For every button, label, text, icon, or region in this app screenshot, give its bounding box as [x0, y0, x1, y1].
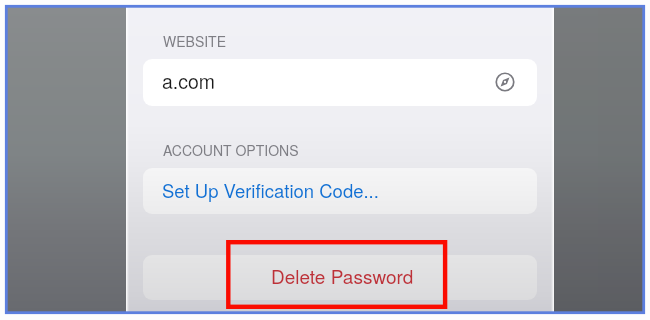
staticText: Set Up Verification Code... [162, 177, 379, 203]
button[interactable]: Open website [493, 70, 517, 94]
button[interactable]: Set Up Verification Code... [143, 168, 537, 214]
staticText: WEBSITE [163, 31, 227, 51]
staticText: ACCOUNT OPTIONS [163, 140, 299, 160]
staticText: Delete Password [271, 262, 414, 289]
button[interactable]: Delete Password [143, 255, 537, 300]
button[interactable]: a.com [143, 59, 537, 106]
staticText: a.com [162, 67, 216, 95]
